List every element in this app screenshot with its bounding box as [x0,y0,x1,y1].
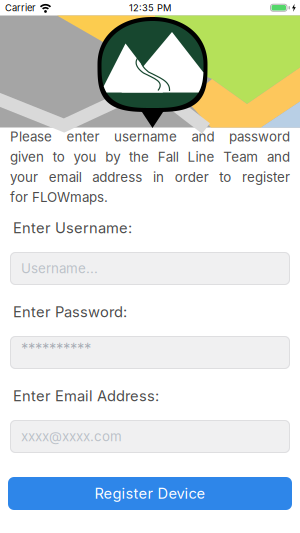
staticText: and [191,128,214,145]
staticText: Team [223,149,258,165]
staticText: your [10,169,38,185]
staticText: register [242,169,290,185]
staticText: Enter Username: [13,219,132,237]
staticText: to [219,169,231,185]
staticText: Username... [21,260,98,276]
staticText: order [175,169,209,185]
staticText: password [229,128,290,145]
staticText: Enter Email Address: [13,387,159,405]
staticText: Fall [158,149,179,165]
button[interactable]: xxxx@xxxx.com [10,420,290,453]
staticText: Enter Password: [13,303,127,321]
staticText: address [92,169,142,185]
button[interactable]: Username... [10,252,290,285]
staticText: 12:35 PM [129,2,171,13]
staticText: Please [10,128,52,145]
staticText: username [114,128,177,145]
staticText: by [105,149,120,165]
staticText: the [129,149,149,165]
staticText: to [53,149,65,165]
staticText: Line [187,149,214,165]
staticText: email [49,169,82,185]
staticText: you [73,149,96,165]
button[interactable]: Register Device [8,477,292,510]
staticText: ********** [21,340,91,357]
staticText: Register Device [94,485,205,502]
staticText: given [10,149,44,165]
staticText: enter [66,128,99,145]
staticText: Carrier [5,2,36,13]
staticText: and [267,149,290,165]
staticText: in [153,169,164,185]
staticText: xxxx@xxxx.com [21,428,122,444]
button[interactable]: ********** [10,336,290,369]
staticText: for FLOWmaps. [10,189,108,205]
